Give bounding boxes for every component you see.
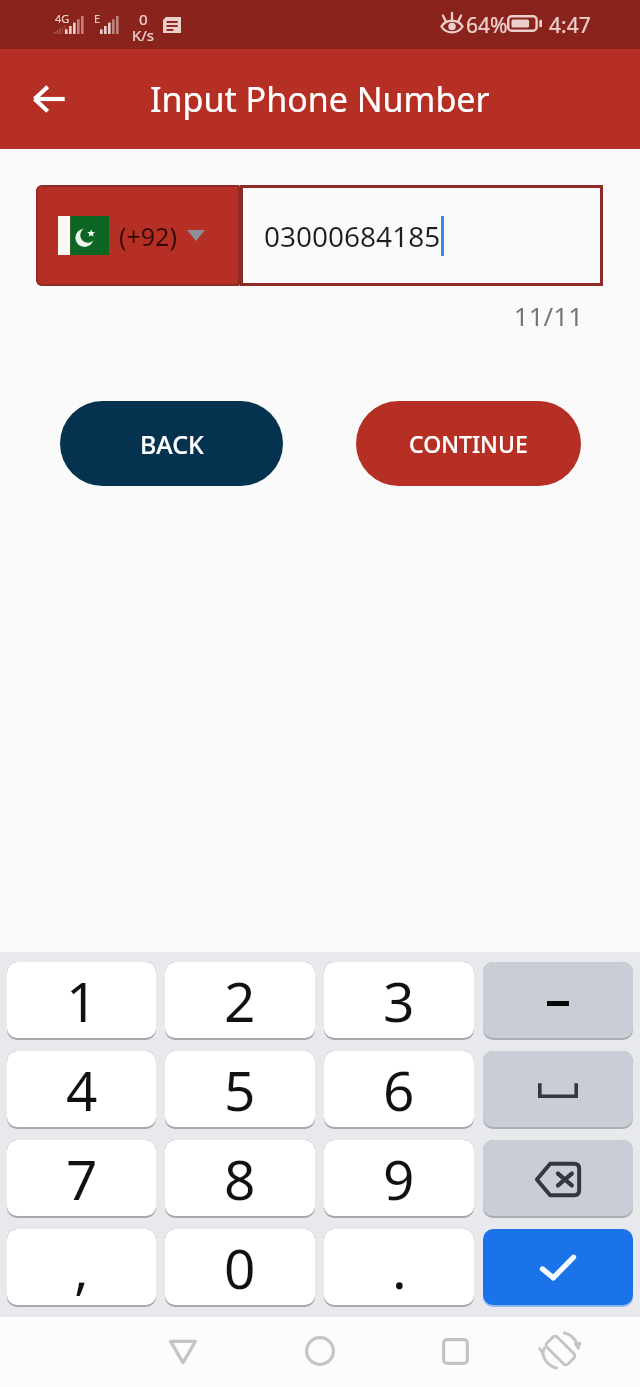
staticText: 7 bbox=[66, 1141, 98, 1216]
button[interactable] bbox=[483, 1051, 633, 1127]
staticText: 0 bbox=[224, 1230, 256, 1305]
button[interactable] bbox=[483, 962, 633, 1038]
staticText: 8 bbox=[224, 1141, 256, 1216]
staticText: 1 bbox=[66, 963, 98, 1038]
button[interactable]: , bbox=[7, 1229, 156, 1305]
staticText: (+92) bbox=[119, 219, 177, 253]
staticText: E bbox=[94, 11, 101, 26]
staticText: Input Phone Number bbox=[150, 76, 490, 122]
staticText: 11/11 bbox=[0, 298, 583, 333]
button[interactable]: Rotate screen bbox=[528, 1318, 592, 1382]
staticText: 9 bbox=[383, 1141, 415, 1216]
button[interactable] bbox=[483, 1140, 633, 1216]
button[interactable]: 8 bbox=[165, 1140, 315, 1216]
button[interactable]: 7 bbox=[7, 1140, 156, 1216]
button[interactable]: 9 bbox=[324, 1140, 474, 1216]
staticText: 0 bbox=[139, 9, 148, 29]
button[interactable]: Back bbox=[151, 1320, 215, 1384]
button[interactable]: 4 bbox=[7, 1051, 156, 1127]
staticText: BACK bbox=[140, 427, 204, 461]
button[interactable]: CONTINUE bbox=[356, 401, 581, 486]
button[interactable]: 1 bbox=[7, 962, 156, 1038]
button[interactable]: 2 bbox=[165, 962, 315, 1038]
button[interactable]: Home bbox=[288, 1319, 352, 1383]
staticText: 4 bbox=[66, 1052, 98, 1127]
staticText: CONTINUE bbox=[409, 428, 528, 459]
staticText: 64% bbox=[466, 11, 508, 40]
button[interactable]: 5 bbox=[165, 1051, 315, 1127]
button[interactable]: 3 bbox=[324, 962, 474, 1038]
staticText: 4:47 bbox=[549, 11, 591, 40]
button[interactable]: (+92) bbox=[36, 185, 240, 286]
staticText: 03000684185 bbox=[264, 217, 441, 255]
staticText: 4G bbox=[55, 11, 70, 26]
button[interactable]: 6 bbox=[324, 1051, 474, 1127]
button[interactable]: Back bbox=[16, 66, 82, 132]
button[interactable]: Recents bbox=[423, 1319, 487, 1383]
staticText: K/s bbox=[132, 25, 155, 45]
staticText: . bbox=[392, 1230, 407, 1305]
staticText: , bbox=[74, 1230, 89, 1305]
button[interactable]: 03000684185 bbox=[240, 185, 603, 286]
staticText: 6 bbox=[383, 1052, 415, 1127]
button[interactable]: 0 bbox=[165, 1229, 315, 1305]
button[interactable] bbox=[483, 1229, 633, 1305]
staticText: 2 bbox=[224, 963, 256, 1038]
staticText: 5 bbox=[224, 1052, 256, 1127]
button[interactable]: . bbox=[324, 1229, 474, 1305]
button[interactable]: BACK bbox=[60, 401, 283, 486]
staticText: 3 bbox=[383, 963, 415, 1038]
